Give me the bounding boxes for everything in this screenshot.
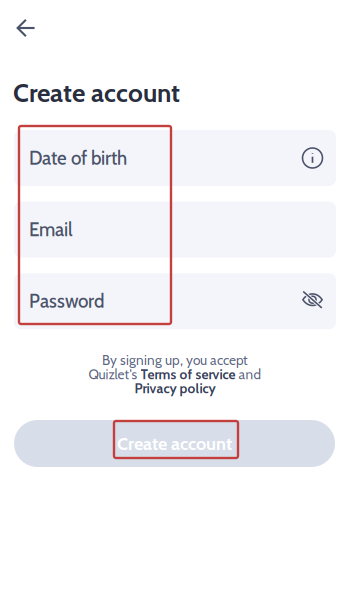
staticText: By signing up, you accept — [102, 352, 248, 368]
button[interactable]: Back — [4, 6, 48, 50]
staticText: Create account — [117, 433, 232, 454]
button[interactable]: Create account — [14, 420, 335, 467]
staticText: Email — [29, 218, 73, 241]
staticText: Date of birth — [29, 147, 127, 169]
staticText: Quizlet's — [88, 366, 140, 382]
button[interactable]: Email — [14, 202, 336, 258]
button[interactable]: Date of birth — [14, 130, 336, 186]
staticText: Create account — [13, 77, 180, 109]
staticText: Password — [29, 290, 104, 313]
button[interactable]: Password — [14, 273, 336, 329]
staticText: Privacy policy — [134, 380, 215, 397]
staticText: Terms of service — [140, 366, 235, 382]
staticText: and — [235, 366, 261, 382]
